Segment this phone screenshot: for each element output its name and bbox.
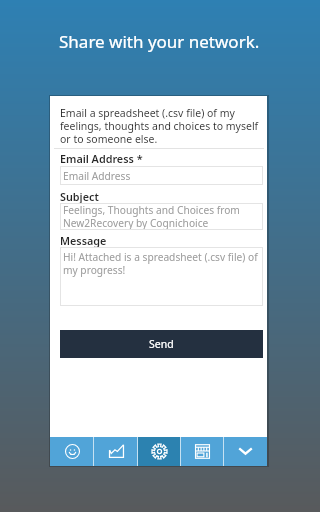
button[interactable]: Mood (50, 437, 94, 466)
button[interactable]: Feelings, Thoughts and Choices from New2… (60, 203, 263, 230)
button[interactable]: Progress (94, 437, 138, 466)
staticText: Hi! Attached is a spreadsheet (.csv file… (63, 250, 260, 277)
staticText: Message (60, 233, 107, 248)
button[interactable]: Email Address (60, 166, 263, 185)
staticText: Subject (60, 189, 99, 204)
staticText: Send (149, 337, 174, 351)
button[interactable]: Store (181, 437, 224, 466)
staticText: Email a spreadsheet (.csv file) of my fe… (60, 106, 260, 146)
button[interactable]: Hi! Attached is a spreadsheet (.csv file… (60, 247, 263, 306)
staticText: Feelings, Thoughts and Choices from New2… (63, 203, 260, 230)
staticText: Email Address (63, 169, 260, 183)
staticText: Share with your network. (59, 30, 260, 53)
staticText: Email Address * (60, 151, 143, 166)
button[interactable]: Settings (138, 437, 181, 466)
button[interactable]: Collapse (224, 437, 267, 466)
button[interactable]: Send (60, 330, 263, 358)
